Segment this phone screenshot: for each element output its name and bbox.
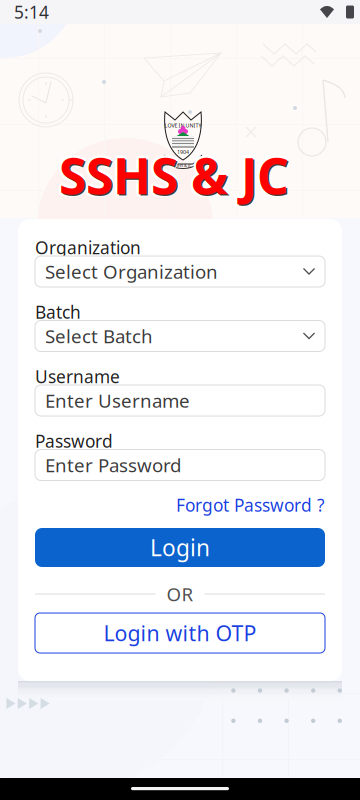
staticText: Enter Password — [45, 453, 181, 477]
staticText: OR — [166, 582, 193, 606]
button[interactable]: Login — [35, 528, 325, 567]
button[interactable]: Login with OTP — [35, 613, 325, 653]
staticText: SSHS & JC — [61, 144, 291, 210]
staticText: Enter Username — [45, 388, 190, 413]
staticText: Forgot Password ? — [176, 493, 325, 516]
staticText: Batch — [35, 300, 81, 323]
staticText: SSHS & JC — [61, 144, 291, 209]
staticText: Username — [35, 365, 120, 388]
staticText: SSHS & JC — [59, 142, 289, 208]
staticText: SSHS & JC — [57, 142, 287, 208]
staticText: SSHS & JC — [174, 163, 192, 168]
staticText: Select Batch — [45, 324, 153, 348]
staticText: SSHS & JC — [59, 140, 289, 205]
button[interactable]: Enter Username — [35, 385, 325, 416]
staticText: SSHS & JC — [59, 145, 289, 210]
staticText: SSHS & JC — [57, 140, 287, 206]
staticText: LOVE IN UNITY — [164, 122, 201, 129]
staticText: SSHS & JC — [57, 144, 287, 210]
button[interactable]: Select Organization — [35, 256, 325, 287]
staticText: Select Organization — [45, 259, 218, 284]
button[interactable]: Forgot Password ? — [35, 495, 325, 515]
staticText: SSHS & JC — [61, 142, 291, 208]
button[interactable]: Enter Password — [35, 449, 325, 480]
staticText: Login — [150, 532, 210, 562]
staticText: 5:14 — [14, 0, 49, 23]
staticText: Login with OTP — [103, 619, 256, 647]
staticText: Organization — [35, 236, 141, 259]
button[interactable]: Select Batch — [35, 320, 325, 351]
staticText: 1904 — [177, 148, 189, 156]
staticText: Password — [35, 429, 113, 452]
staticText: SSHS & JC — [61, 140, 291, 206]
